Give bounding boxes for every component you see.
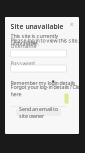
staticText: Please log in to view this site. (10, 37, 78, 44)
button[interactable]: Send an email to site owner (16, 109, 61, 116)
staticText: Site unavailable (10, 22, 63, 31)
staticText: This site is currently unavailable. (10, 32, 58, 47)
staticText: Send an email to site owner (19, 105, 58, 120)
staticText: × (69, 19, 74, 30)
button[interactable]: Close (68, 20, 76, 28)
staticText: Remember my login details (10, 79, 75, 87)
staticText: Forgot your log-in details? Click here (10, 83, 83, 98)
staticText: Password (10, 60, 34, 67)
staticText: Username (10, 42, 36, 50)
